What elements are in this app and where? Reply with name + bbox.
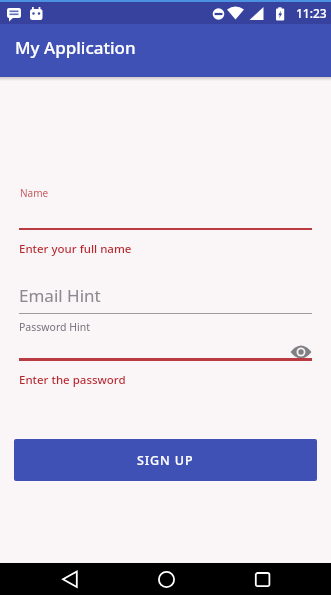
staticText: Enter the password (19, 372, 126, 388)
button[interactable] (121, 563, 211, 595)
staticText: My Application (15, 36, 136, 59)
staticText: SIGN UP (137, 452, 194, 469)
button[interactable]: SIGN UP (14, 439, 317, 481)
staticText: Enter your full name (19, 241, 132, 257)
button[interactable] (25, 563, 115, 595)
staticText: 11:23 (296, 5, 327, 21)
button[interactable] (290, 345, 312, 359)
staticText: Name (20, 186, 49, 200)
button[interactable] (217, 563, 307, 595)
button[interactable]: Password Hint (19, 320, 90, 334)
button[interactable]: Email Hint (19, 284, 101, 307)
